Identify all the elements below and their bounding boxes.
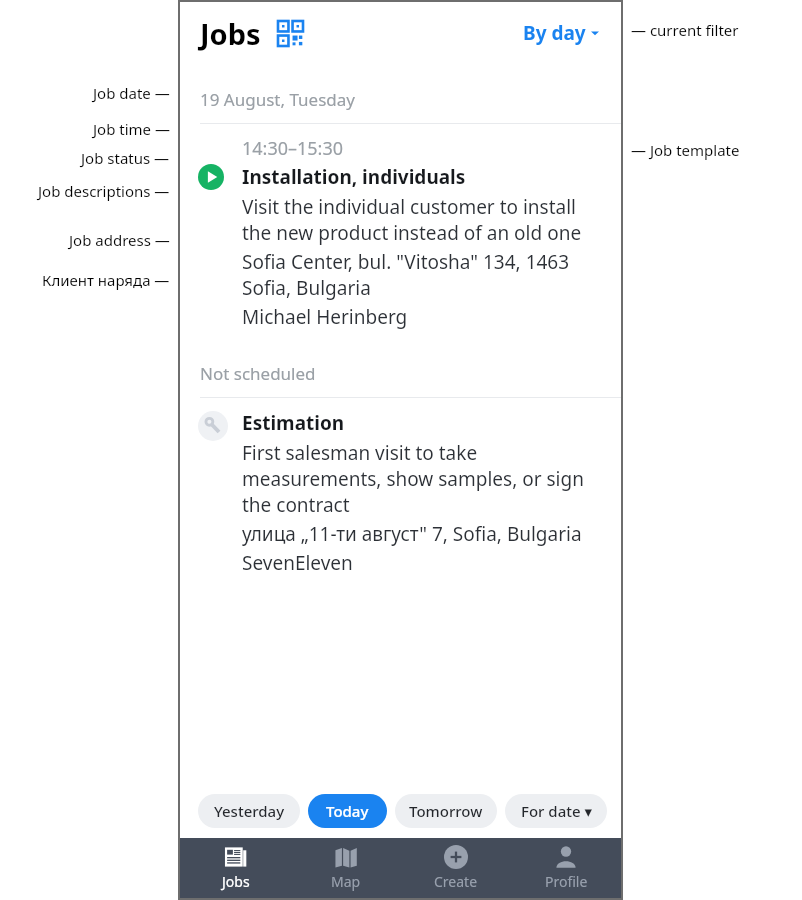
staticText: — current filter bbox=[631, 20, 739, 40]
button[interactable]: Profile bbox=[511, 838, 621, 898]
staticText: By day bbox=[523, 20, 586, 46]
button[interactable]: For date ▾ bbox=[505, 794, 607, 828]
button[interactable]: Today bbox=[308, 794, 387, 828]
staticText: Create bbox=[434, 872, 478, 891]
staticText: Yesterday bbox=[214, 801, 285, 821]
staticText: Клиент наряда — bbox=[42, 270, 170, 290]
button[interactable]: Estimation bbox=[180, 398, 621, 580]
button[interactable]: Jobs bbox=[180, 838, 291, 898]
button[interactable]: Tomorrow bbox=[395, 794, 497, 828]
staticText: Jobs bbox=[200, 14, 261, 53]
staticText: Today bbox=[326, 801, 369, 821]
staticText: Visit the individual customer to install… bbox=[242, 194, 605, 246]
staticText: Not scheduled bbox=[200, 362, 316, 385]
staticText: Tomorrow bbox=[409, 801, 483, 821]
staticText: For date ▾ bbox=[521, 801, 592, 821]
staticText: First salesman visit to take measurement… bbox=[242, 440, 605, 518]
button[interactable]: Scan QR code bbox=[275, 18, 305, 48]
button[interactable]: By day bbox=[519, 16, 603, 50]
button[interactable]: Map bbox=[291, 838, 401, 898]
button[interactable]: Yesterday bbox=[198, 794, 300, 828]
staticText: 19 August, Tuesday bbox=[200, 88, 355, 111]
staticText: Estimation bbox=[242, 410, 345, 436]
staticText: Job descriptions — bbox=[38, 181, 170, 201]
button[interactable]: 14:30–15:30 bbox=[180, 124, 621, 334]
staticText: Job status — bbox=[81, 148, 170, 168]
staticText: SevenEleven bbox=[242, 550, 353, 576]
staticText: Michael Herinberg bbox=[242, 304, 408, 330]
staticText: Map bbox=[331, 872, 361, 891]
staticText: Jobs bbox=[222, 872, 250, 891]
staticText: улица „11-ти август" 7, Sofia, Bulgaria bbox=[242, 521, 582, 547]
button[interactable]: Create bbox=[401, 838, 511, 898]
staticText: — Job template bbox=[631, 140, 740, 160]
staticText: Job address — bbox=[69, 230, 170, 250]
staticText: Profile bbox=[545, 872, 588, 891]
staticText: Installation, individuals bbox=[242, 164, 466, 190]
staticText: 14:30–15:30 bbox=[242, 136, 344, 161]
staticText: Job time — bbox=[93, 119, 170, 139]
staticText: Job date — bbox=[93, 83, 170, 103]
staticText: Sofia Center, bul. "Vitosha" 134, 1463 S… bbox=[242, 249, 605, 301]
